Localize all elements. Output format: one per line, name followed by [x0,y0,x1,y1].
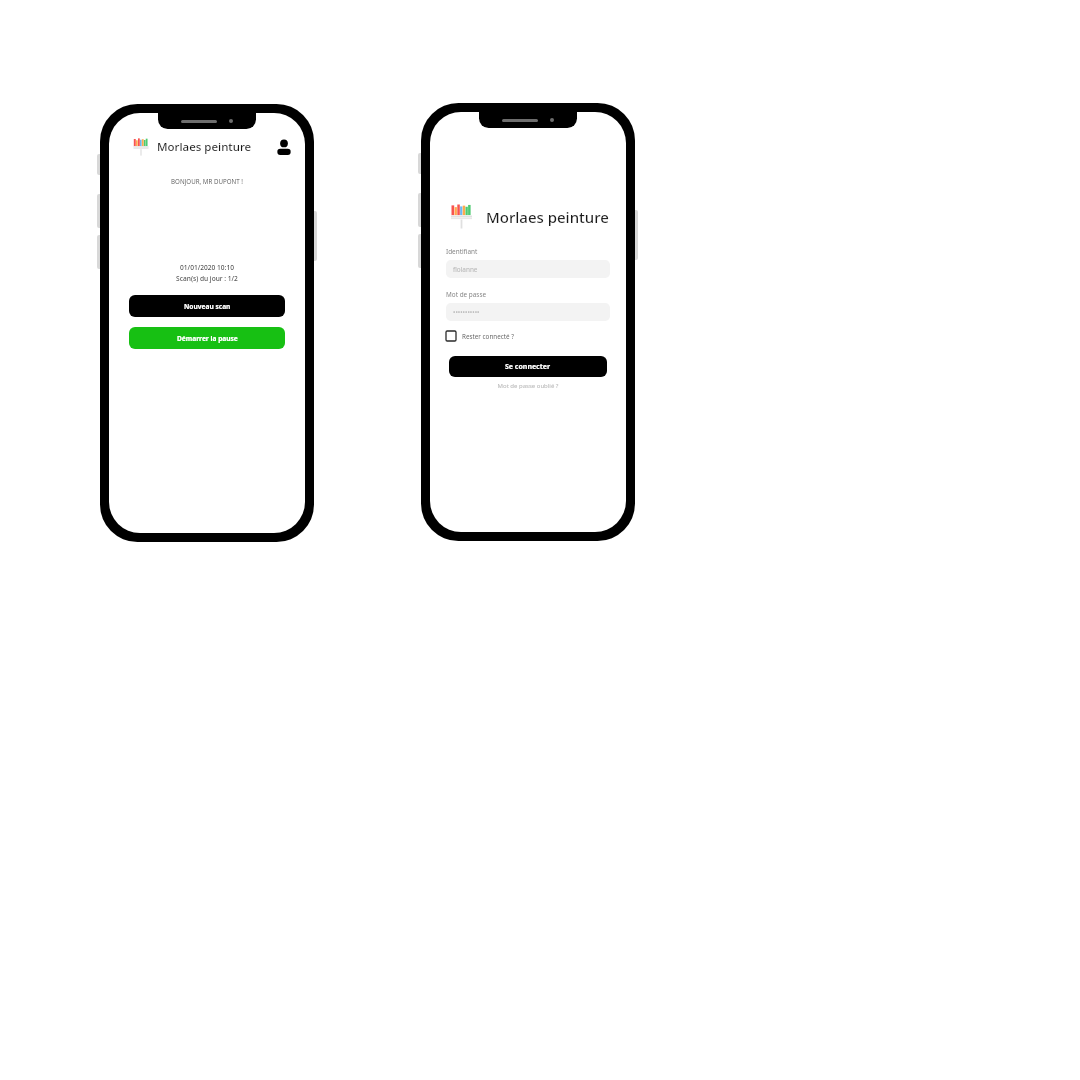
button[interactable]: Rester connecté ? [446,331,514,341]
button[interactable]: Nouveau scan [129,295,285,317]
button[interactable]: Compte utilisateur [275,138,293,156]
button[interactable]: Se connecter [449,356,607,377]
staticText: Mot de passe oublié ? [446,382,610,390]
staticText: Morlaes peinture [157,139,252,155]
staticText: BONJOUR, MR DUPONT ! [109,177,305,185]
staticText: flolanne [453,265,478,274]
staticText: Morlaes peinture [486,207,609,227]
button[interactable]: ••••••••••• [446,303,610,321]
button[interactable]: Mot de passe oublié ? [446,382,610,390]
staticText: 01/01/2020 10:10 [109,263,305,272]
button[interactable]: Démarrer la pause [129,327,285,349]
button[interactable]: flolanne [446,260,610,278]
staticText: Mot de passe [446,290,487,299]
staticText: Nouveau scan [184,302,231,311]
staticText: Identifiant [446,247,478,256]
staticText: Se connecter [505,362,551,372]
other: Compte utilisateur [275,138,293,156]
staticText: Démarrer la pause [177,334,238,343]
staticText: ••••••••••• [453,308,480,317]
staticText: Rester connecté ? [462,332,514,341]
staticText: Scan(s) du jour : 1/2 [109,274,305,283]
